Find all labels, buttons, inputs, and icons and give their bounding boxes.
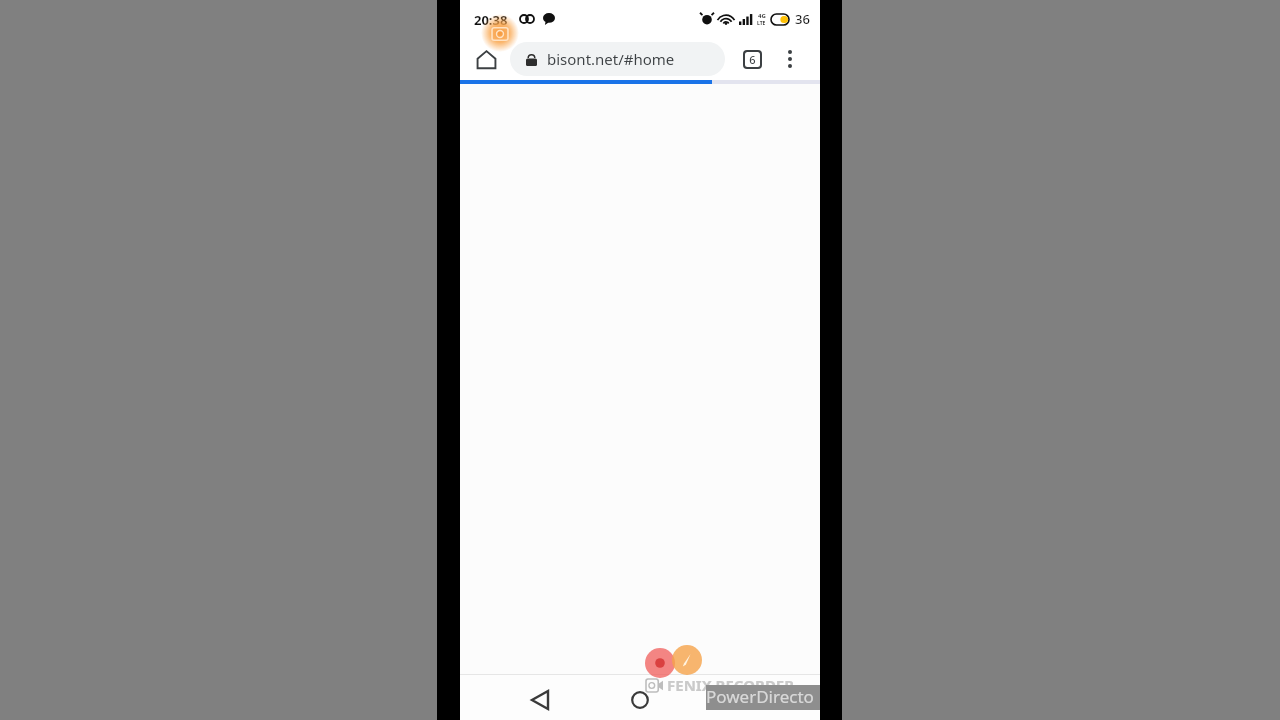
staticText: bisont.net/#home (547, 49, 675, 69)
staticText: 4G (758, 12, 766, 20)
button[interactable]: Home (622, 682, 658, 718)
button[interactable]: More options (776, 45, 804, 73)
staticText: 36 (795, 10, 810, 28)
button[interactable]: Back (522, 682, 558, 718)
button[interactable]: Home (470, 43, 502, 75)
button[interactable]: bisont.net/#home (510, 42, 725, 76)
staticText: FENIX RECORDER (667, 675, 795, 695)
button[interactable]: Tabs, 6 open (738, 45, 766, 73)
staticText: 6 (749, 52, 756, 67)
staticText: 20:38 (474, 11, 508, 29)
staticText: PowerDirector (706, 685, 820, 710)
staticText: LTE (757, 20, 766, 27)
